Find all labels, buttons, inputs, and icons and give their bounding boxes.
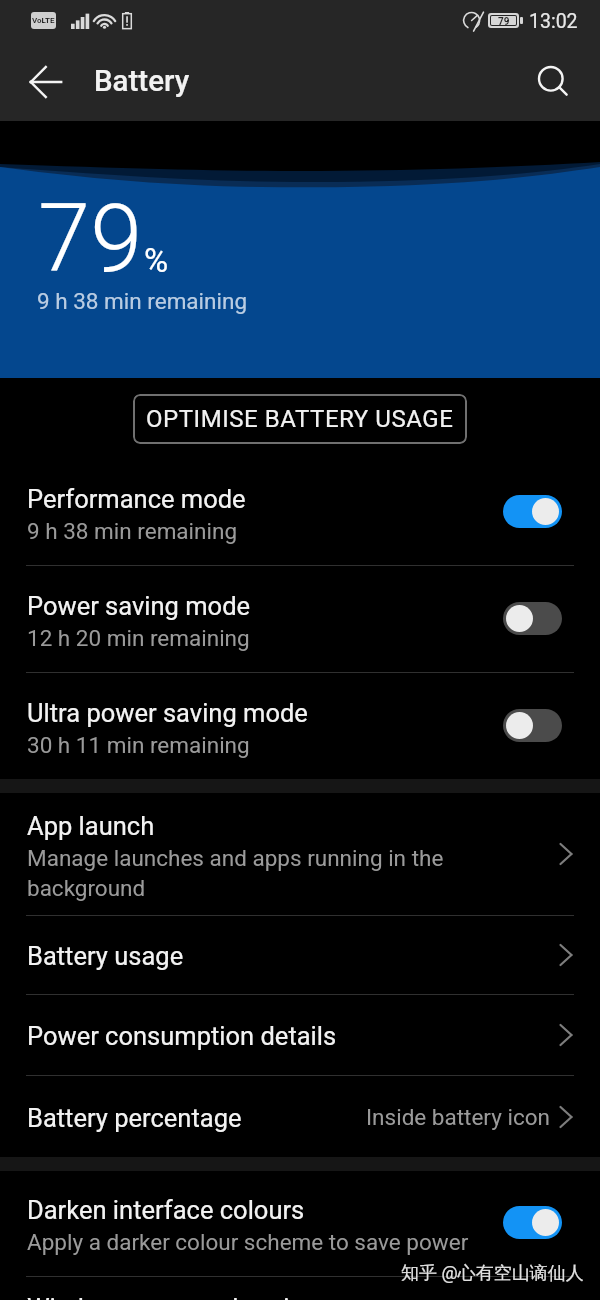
staticText: Power saving mode: [27, 591, 251, 621]
staticText: 9 h 38 min remaining: [37, 288, 248, 314]
staticText: Inside battery icon: [366, 1104, 550, 1130]
button[interactable]: OPTIMISE BATTERY USAGE: [133, 394, 467, 444]
staticText: Wireless reverse charging: [27, 1293, 318, 1300]
staticText: OPTIMISE BATTERY USAGE: [146, 405, 454, 433]
staticText: Apply a darker colour scheme to save pow…: [27, 1229, 469, 1255]
staticText: VoLTE: [32, 16, 55, 25]
staticText: 13:02: [529, 10, 578, 33]
button[interactable]: Back: [22, 58, 70, 106]
staticText: App launch: [27, 811, 155, 841]
button[interactable]: Battery usage: [0, 916, 600, 994]
button[interactable]: Toggle: [503, 709, 562, 742]
staticText: Power consumption details: [27, 1021, 337, 1051]
button[interactable]: Power saving mode: [0, 566, 600, 672]
button[interactable]: Toggle: [503, 1206, 562, 1239]
staticText: 知乎 @心有空山谪仙人: [401, 1262, 584, 1285]
button[interactable]: Toggle: [503, 495, 562, 528]
button[interactable]: Ultra power saving mode: [0, 673, 600, 779]
button[interactable]: Darken interface colours: [0, 1171, 600, 1276]
staticText: Battery: [94, 64, 190, 99]
staticText: Battery usage: [27, 941, 184, 971]
button[interactable]: Battery percentage: [0, 1076, 600, 1157]
button[interactable]: Search: [530, 58, 578, 106]
staticText: Ultra power saving mode: [27, 698, 308, 728]
staticText: 79: [498, 16, 510, 25]
button[interactable]: Performance mode: [0, 444, 600, 565]
staticText: 79: [38, 184, 143, 294]
staticText: 30 h 11 min remaining: [27, 732, 250, 758]
staticText: Battery percentage: [27, 1103, 242, 1133]
staticText: Performance mode: [27, 484, 246, 514]
button[interactable]: Power consumption details: [0, 995, 600, 1075]
staticText: %: [144, 241, 169, 280]
button[interactable]: Toggle: [503, 602, 562, 635]
staticText: 9 h 38 min remaining: [27, 518, 238, 544]
staticText: Manage launches and apps running in the …: [27, 845, 444, 901]
button[interactable]: App launch: [0, 793, 600, 915]
staticText: 12 h 20 min remaining: [27, 625, 250, 651]
staticText: Darken interface colours: [27, 1195, 305, 1225]
